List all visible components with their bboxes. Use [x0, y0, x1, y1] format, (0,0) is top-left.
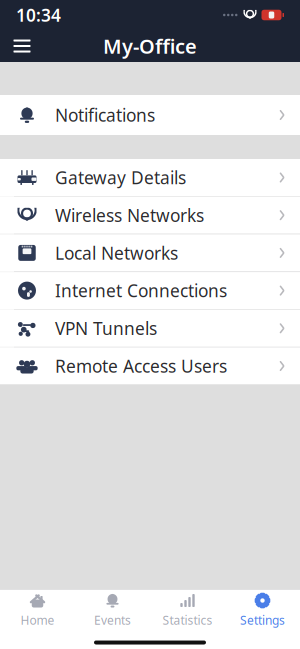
- button[interactable]: Internet Connections: [0, 272, 300, 309]
- button[interactable]: Local Networks: [0, 234, 300, 271]
- button[interactable]: Gateway Details: [0, 159, 300, 196]
- staticText: 10:34: [16, 3, 61, 26]
- button[interactable]: Menu: [0, 30, 44, 62]
- staticText: Gateway Details: [55, 166, 186, 189]
- staticText: Internet Connections: [55, 279, 227, 302]
- staticText: Statistics: [162, 612, 212, 628]
- staticText: Events: [94, 612, 131, 628]
- staticText: My-Office: [103, 33, 197, 59]
- staticText: Local Networks: [55, 241, 178, 264]
- button[interactable]: VPN Tunnels: [0, 310, 300, 347]
- button[interactable]: Statistics: [150, 590, 225, 630]
- staticText: Home: [20, 612, 54, 628]
- staticText: Wireless Networks: [55, 204, 204, 227]
- staticText: Notifications: [55, 103, 155, 126]
- button[interactable]: Home: [0, 590, 75, 630]
- button[interactable]: Events: [75, 590, 150, 630]
- staticText: Settings: [240, 612, 285, 628]
- button[interactable]: Settings: [225, 590, 300, 630]
- staticText: Remote Access Users: [55, 354, 227, 377]
- button[interactable]: Remote Access Users: [0, 347, 300, 384]
- button[interactable]: Wireless Networks: [0, 197, 300, 234]
- staticText: VPN Tunnels: [55, 317, 157, 340]
- button[interactable]: Notifications: [0, 95, 300, 135]
